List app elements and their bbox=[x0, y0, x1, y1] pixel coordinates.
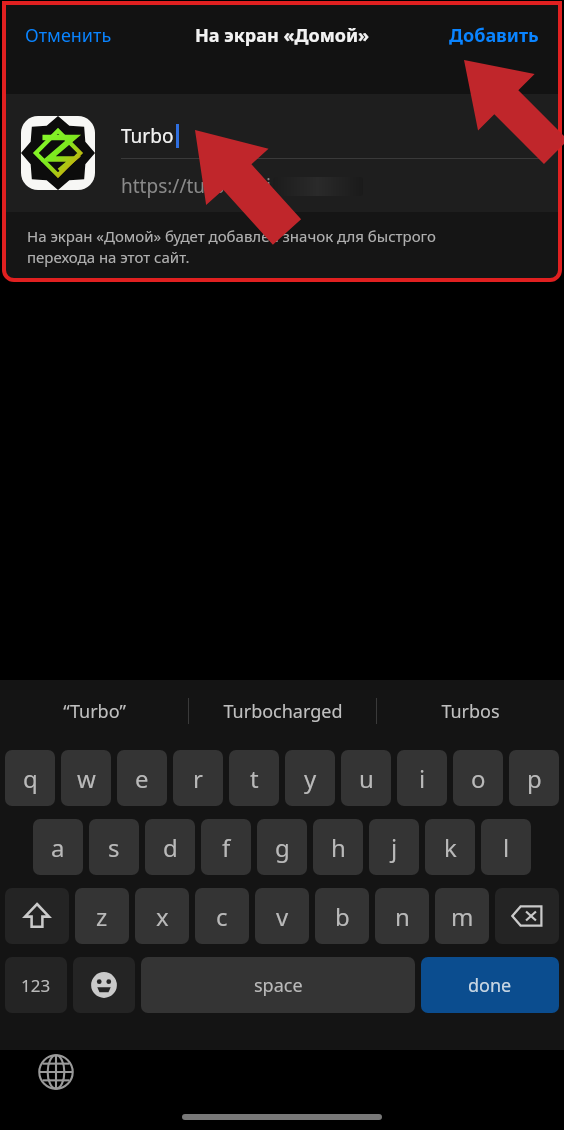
button[interactable]: p bbox=[509, 750, 559, 806]
button[interactable]: w bbox=[61, 750, 111, 806]
button[interactable]: Добавить bbox=[441, 17, 547, 54]
staticText: k bbox=[444, 831, 457, 864]
staticText: o bbox=[471, 762, 486, 795]
staticText: v bbox=[276, 900, 289, 933]
button[interactable]: Отменить bbox=[17, 17, 120, 54]
button[interactable]: r bbox=[173, 750, 223, 806]
button[interactable]: 123 bbox=[5, 957, 67, 1013]
button[interactable]: o bbox=[453, 750, 503, 806]
button[interactable]: l bbox=[481, 819, 531, 875]
button[interactable]: g bbox=[257, 819, 307, 875]
staticText: w bbox=[77, 762, 96, 795]
button[interactable]: Turbos bbox=[377, 680, 564, 742]
staticText: d bbox=[163, 831, 178, 864]
staticText: z bbox=[96, 900, 108, 933]
staticText: p bbox=[527, 762, 542, 795]
staticText: Turbos bbox=[441, 699, 500, 724]
staticText: l bbox=[503, 831, 510, 864]
staticText: Turbocharged bbox=[223, 699, 343, 724]
staticText: Turbo bbox=[121, 123, 174, 149]
button[interactable]: i bbox=[397, 750, 447, 806]
button[interactable]: d bbox=[145, 819, 195, 875]
button[interactable]: j bbox=[369, 819, 419, 875]
button[interactable]: x bbox=[135, 888, 189, 944]
staticText: r bbox=[193, 762, 203, 795]
staticText: u bbox=[359, 762, 374, 795]
staticText: b bbox=[335, 900, 350, 933]
button[interactable]: Backspace bbox=[495, 888, 559, 944]
staticText: g bbox=[275, 831, 290, 864]
button[interactable]: k bbox=[425, 819, 475, 875]
button[interactable]: a bbox=[33, 819, 83, 875]
staticText: s bbox=[108, 831, 120, 864]
button[interactable]: v bbox=[255, 888, 309, 944]
staticText: c bbox=[216, 900, 228, 933]
button[interactable]: y bbox=[285, 750, 335, 806]
staticText: f bbox=[222, 831, 231, 864]
button[interactable]: u bbox=[341, 750, 391, 806]
button[interactable]: f bbox=[201, 819, 251, 875]
staticText: h bbox=[331, 831, 346, 864]
staticText: https://turbo bbox=[121, 173, 237, 199]
button[interactable]: b bbox=[315, 888, 369, 944]
staticText: a bbox=[51, 831, 65, 864]
staticText: m bbox=[451, 900, 474, 933]
staticText: 123 bbox=[21, 974, 51, 997]
button[interactable]: Turbocharged bbox=[189, 680, 376, 742]
staticText: j bbox=[391, 831, 398, 864]
staticText: space bbox=[254, 973, 303, 998]
button[interactable]: Emoji bbox=[73, 957, 135, 1013]
button[interactable]: space bbox=[141, 957, 415, 1013]
staticText: e bbox=[135, 762, 149, 795]
staticText: q bbox=[23, 762, 38, 795]
button[interactable]: z bbox=[75, 888, 129, 944]
button[interactable]: done bbox=[421, 957, 559, 1013]
staticText: x bbox=[156, 900, 169, 933]
staticText: casi bbox=[237, 173, 271, 199]
staticText: Отменить bbox=[25, 23, 112, 48]
button[interactable]: m bbox=[435, 888, 489, 944]
button[interactable]: s bbox=[89, 819, 139, 875]
button[interactable]: “Turbo” bbox=[0, 680, 188, 742]
button[interactable]: t bbox=[229, 750, 279, 806]
staticText: Добавить bbox=[449, 23, 539, 48]
staticText: На экран «Домой» будет добавлен значок д… bbox=[27, 226, 436, 268]
button[interactable]: Shift bbox=[5, 888, 69, 944]
staticText: i bbox=[419, 762, 426, 795]
staticText: y bbox=[304, 762, 317, 795]
button[interactable]: n bbox=[375, 888, 429, 944]
staticText: На экран «Домой» bbox=[195, 23, 370, 48]
staticText: “Turbo” bbox=[63, 699, 126, 724]
staticText: t bbox=[250, 762, 259, 795]
button[interactable]: q bbox=[5, 750, 55, 806]
staticText: n bbox=[395, 900, 410, 933]
staticText: done bbox=[468, 973, 512, 998]
button[interactable]: e bbox=[117, 750, 167, 806]
button[interactable]: c bbox=[195, 888, 249, 944]
button[interactable]: Change keyboard language bbox=[34, 1050, 78, 1094]
button[interactable]: h bbox=[313, 819, 363, 875]
